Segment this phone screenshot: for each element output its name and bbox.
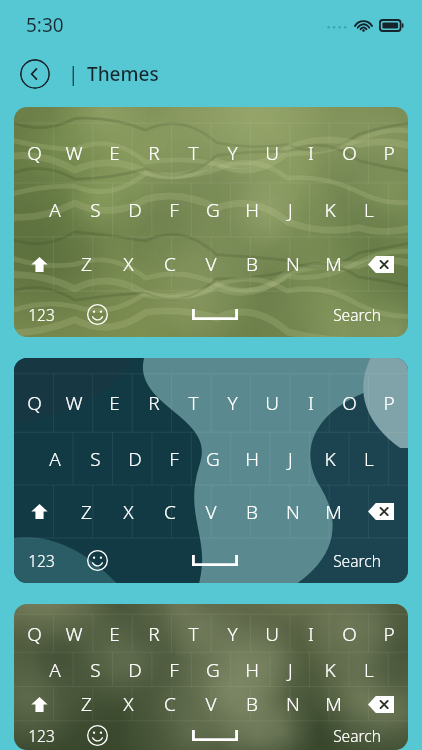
button[interactable]: F: [154, 653, 193, 687]
button[interactable]: C: [149, 237, 190, 291]
button[interactable]: N: [272, 237, 313, 291]
button[interactable]: H: [232, 653, 271, 687]
button[interactable]: K: [310, 653, 349, 687]
button[interactable]: G: [193, 653, 232, 687]
button[interactable]: Space: [125, 721, 305, 750]
button[interactable]: H: [232, 432, 271, 485]
button[interactable]: Search: [305, 291, 408, 337]
button[interactable]: X: [107, 237, 149, 291]
button[interactable]: S: [75, 183, 115, 237]
button[interactable]: T: [174, 123, 213, 183]
button[interactable]: G: [193, 432, 232, 485]
button[interactable]: Space: [125, 291, 305, 337]
button[interactable]: Q: [14, 123, 54, 183]
button[interactable]: O: [330, 374, 369, 432]
button[interactable]: X: [107, 485, 149, 538]
button[interactable]: Q: [14, 358, 408, 583]
button[interactable]: D: [115, 432, 154, 485]
button[interactable]: A: [35, 432, 75, 485]
button[interactable]: Q: [14, 374, 54, 432]
button[interactable]: B: [231, 237, 272, 291]
button[interactable]: 123: [14, 291, 69, 337]
button[interactable]: Y: [213, 374, 252, 432]
button[interactable]: Emoji: [69, 721, 125, 750]
button[interactable]: T: [174, 615, 213, 653]
button[interactable]: U: [252, 615, 291, 653]
button[interactable]: P: [369, 123, 408, 183]
button[interactable]: B: [231, 687, 272, 721]
button[interactable]: I: [291, 123, 330, 183]
button[interactable]: M: [313, 237, 354, 291]
button[interactable]: Q: [14, 604, 408, 750]
button[interactable]: Y: [213, 123, 252, 183]
button[interactable]: B: [231, 485, 272, 538]
button[interactable]: A: [35, 183, 75, 237]
button[interactable]: I: [291, 615, 330, 653]
button[interactable]: J: [271, 653, 310, 687]
button[interactable]: U: [252, 123, 291, 183]
button[interactable]: P: [369, 615, 408, 653]
button[interactable]: Search: [305, 538, 408, 583]
button[interactable]: Shift: [14, 237, 65, 291]
button[interactable]: Z: [65, 687, 107, 721]
button[interactable]: W: [54, 123, 94, 183]
button[interactable]: V: [190, 687, 231, 721]
button[interactable]: O: [330, 615, 369, 653]
button[interactable]: E: [94, 615, 134, 653]
button[interactable]: S: [75, 432, 115, 485]
button[interactable]: T: [174, 374, 213, 432]
button[interactable]: 123: [14, 538, 69, 583]
button[interactable]: Q: [14, 107, 408, 337]
button[interactable]: L: [349, 653, 388, 687]
button[interactable]: E: [94, 374, 134, 432]
button[interactable]: N: [272, 485, 313, 538]
button[interactable]: L: [349, 183, 388, 237]
button[interactable]: J: [271, 183, 310, 237]
button[interactable]: H: [232, 183, 271, 237]
button[interactable]: M: [313, 485, 354, 538]
button[interactable]: F: [154, 183, 193, 237]
button[interactable]: Backspace: [354, 237, 408, 291]
button[interactable]: W: [54, 615, 94, 653]
button[interactable]: K: [310, 183, 349, 237]
button[interactable]: 123: [14, 721, 69, 750]
button[interactable]: R: [134, 123, 174, 183]
button[interactable]: D: [115, 183, 154, 237]
button[interactable]: Backspace: [354, 485, 408, 538]
button[interactable]: I: [291, 374, 330, 432]
button[interactable]: L: [349, 432, 388, 485]
button[interactable]: V: [190, 485, 231, 538]
button[interactable]: Z: [65, 485, 107, 538]
button[interactable]: Emoji: [69, 291, 125, 337]
button[interactable]: C: [149, 687, 190, 721]
button[interactable]: S: [75, 653, 115, 687]
button[interactable]: P: [369, 374, 408, 432]
button[interactable]: Emoji: [69, 538, 125, 583]
button[interactable]: U: [252, 374, 291, 432]
button[interactable]: R: [134, 374, 174, 432]
button[interactable]: M: [313, 687, 354, 721]
button[interactable]: E: [94, 123, 134, 183]
button[interactable]: V: [190, 237, 231, 291]
button[interactable]: R: [134, 615, 174, 653]
button[interactable]: Backspace: [354, 687, 408, 721]
button[interactable]: Shift: [14, 687, 65, 721]
button[interactable]: K: [310, 432, 349, 485]
button[interactable]: Back: [20, 59, 50, 89]
button[interactable]: O: [330, 123, 369, 183]
button[interactable]: N: [272, 687, 313, 721]
button[interactable]: F: [154, 432, 193, 485]
button[interactable]: Shift: [14, 485, 65, 538]
button[interactable]: J: [271, 432, 310, 485]
button[interactable]: W: [54, 374, 94, 432]
button[interactable]: X: [107, 687, 149, 721]
button[interactable]: D: [115, 653, 154, 687]
button[interactable]: G: [193, 183, 232, 237]
button[interactable]: A: [35, 653, 75, 687]
button[interactable]: Space: [125, 538, 305, 583]
button[interactable]: Y: [213, 615, 252, 653]
button[interactable]: Z: [65, 237, 107, 291]
button[interactable]: C: [149, 485, 190, 538]
button[interactable]: Search: [305, 721, 408, 750]
button[interactable]: Q: [14, 615, 54, 653]
